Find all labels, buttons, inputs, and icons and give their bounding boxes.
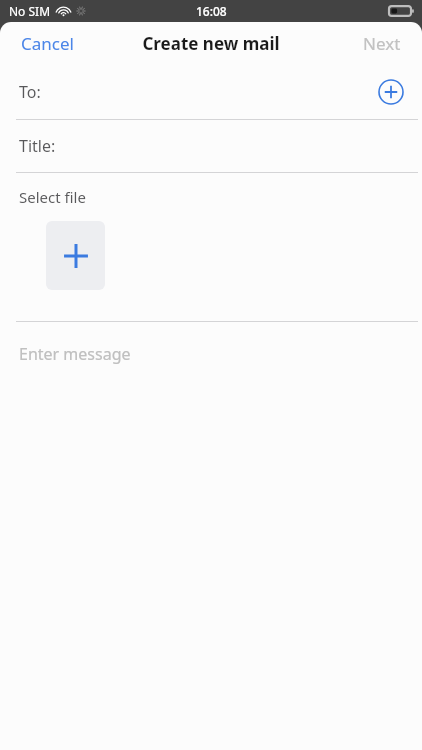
- button[interactable]: Cancel: [0, 23, 95, 64]
- staticText: Enter message: [19, 343, 131, 365]
- staticText: Cancel: [21, 32, 74, 55]
- staticText: Next: [363, 32, 401, 55]
- staticText: 16:08: [196, 3, 227, 19]
- button[interactable]: To:: [0, 64, 422, 119]
- button[interactable]: Title:: [0, 120, 422, 172]
- button[interactable]: Add recipient: [374, 75, 408, 109]
- staticText: Title:: [19, 135, 56, 157]
- button[interactable]: Add file: [46, 221, 105, 290]
- button[interactable]: Enter message: [0, 322, 422, 386]
- staticText: To:: [19, 81, 41, 103]
- button[interactable]: Next: [342, 23, 422, 64]
- staticText: Create new mail: [142, 32, 280, 55]
- staticText: Select file: [19, 187, 86, 207]
- staticText: No SIM: [9, 3, 51, 19]
